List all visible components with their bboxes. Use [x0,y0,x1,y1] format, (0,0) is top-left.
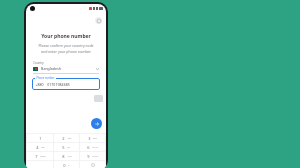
button[interactable]: 9 [80,152,105,160]
staticText: Bangladesh [41,66,61,71]
staticText: DEF [93,137,97,140]
staticText: 5 [62,145,65,150]
staticText: 2 [62,136,65,141]
staticText: TUV [67,155,72,158]
staticText: WXYZ [92,155,98,158]
staticText: 1 [39,136,42,141]
button[interactable]: Next [91,118,102,129]
staticText: 6 [87,145,90,150]
staticText: +880 [35,82,44,87]
button[interactable]: 3 [80,134,105,142]
staticText: Your phone number [41,33,91,40]
staticText: and enter your phone number [41,49,91,54]
button[interactable]: 7 [27,152,53,160]
staticText: 01701984685 [47,82,70,87]
button[interactable]: 0 [54,161,79,168]
button[interactable]: Help [95,17,102,24]
button[interactable]: Backspace [80,161,105,168]
staticText: MNO [92,146,98,149]
button[interactable]: 4 [27,143,53,151]
button[interactable]: Suggestion [94,95,103,102]
button[interactable]: 1 [27,134,53,142]
staticText: Phone number [36,76,55,80]
staticText: 8 [62,154,65,159]
button[interactable]: 2 [54,134,79,142]
button[interactable]: Country [33,61,99,74]
staticText: 4 [36,145,39,150]
staticText: 9 [87,154,90,159]
button[interactable]: 5 [54,143,79,151]
button[interactable]: 6 [80,143,105,151]
staticText: 7 [35,154,38,159]
staticText: GHI [41,146,45,149]
staticText: PQRS [40,155,46,158]
staticText: ABC [67,137,72,140]
button[interactable]: +880 [32,78,100,90]
staticText: + [68,164,70,167]
staticText: 3 [88,136,91,141]
staticText: 0 [63,163,66,168]
staticText: Please confirm your country code [38,43,94,48]
button[interactable]: 8 [54,152,79,160]
staticText: JKL [67,146,71,149]
staticText: Country [33,61,44,65]
